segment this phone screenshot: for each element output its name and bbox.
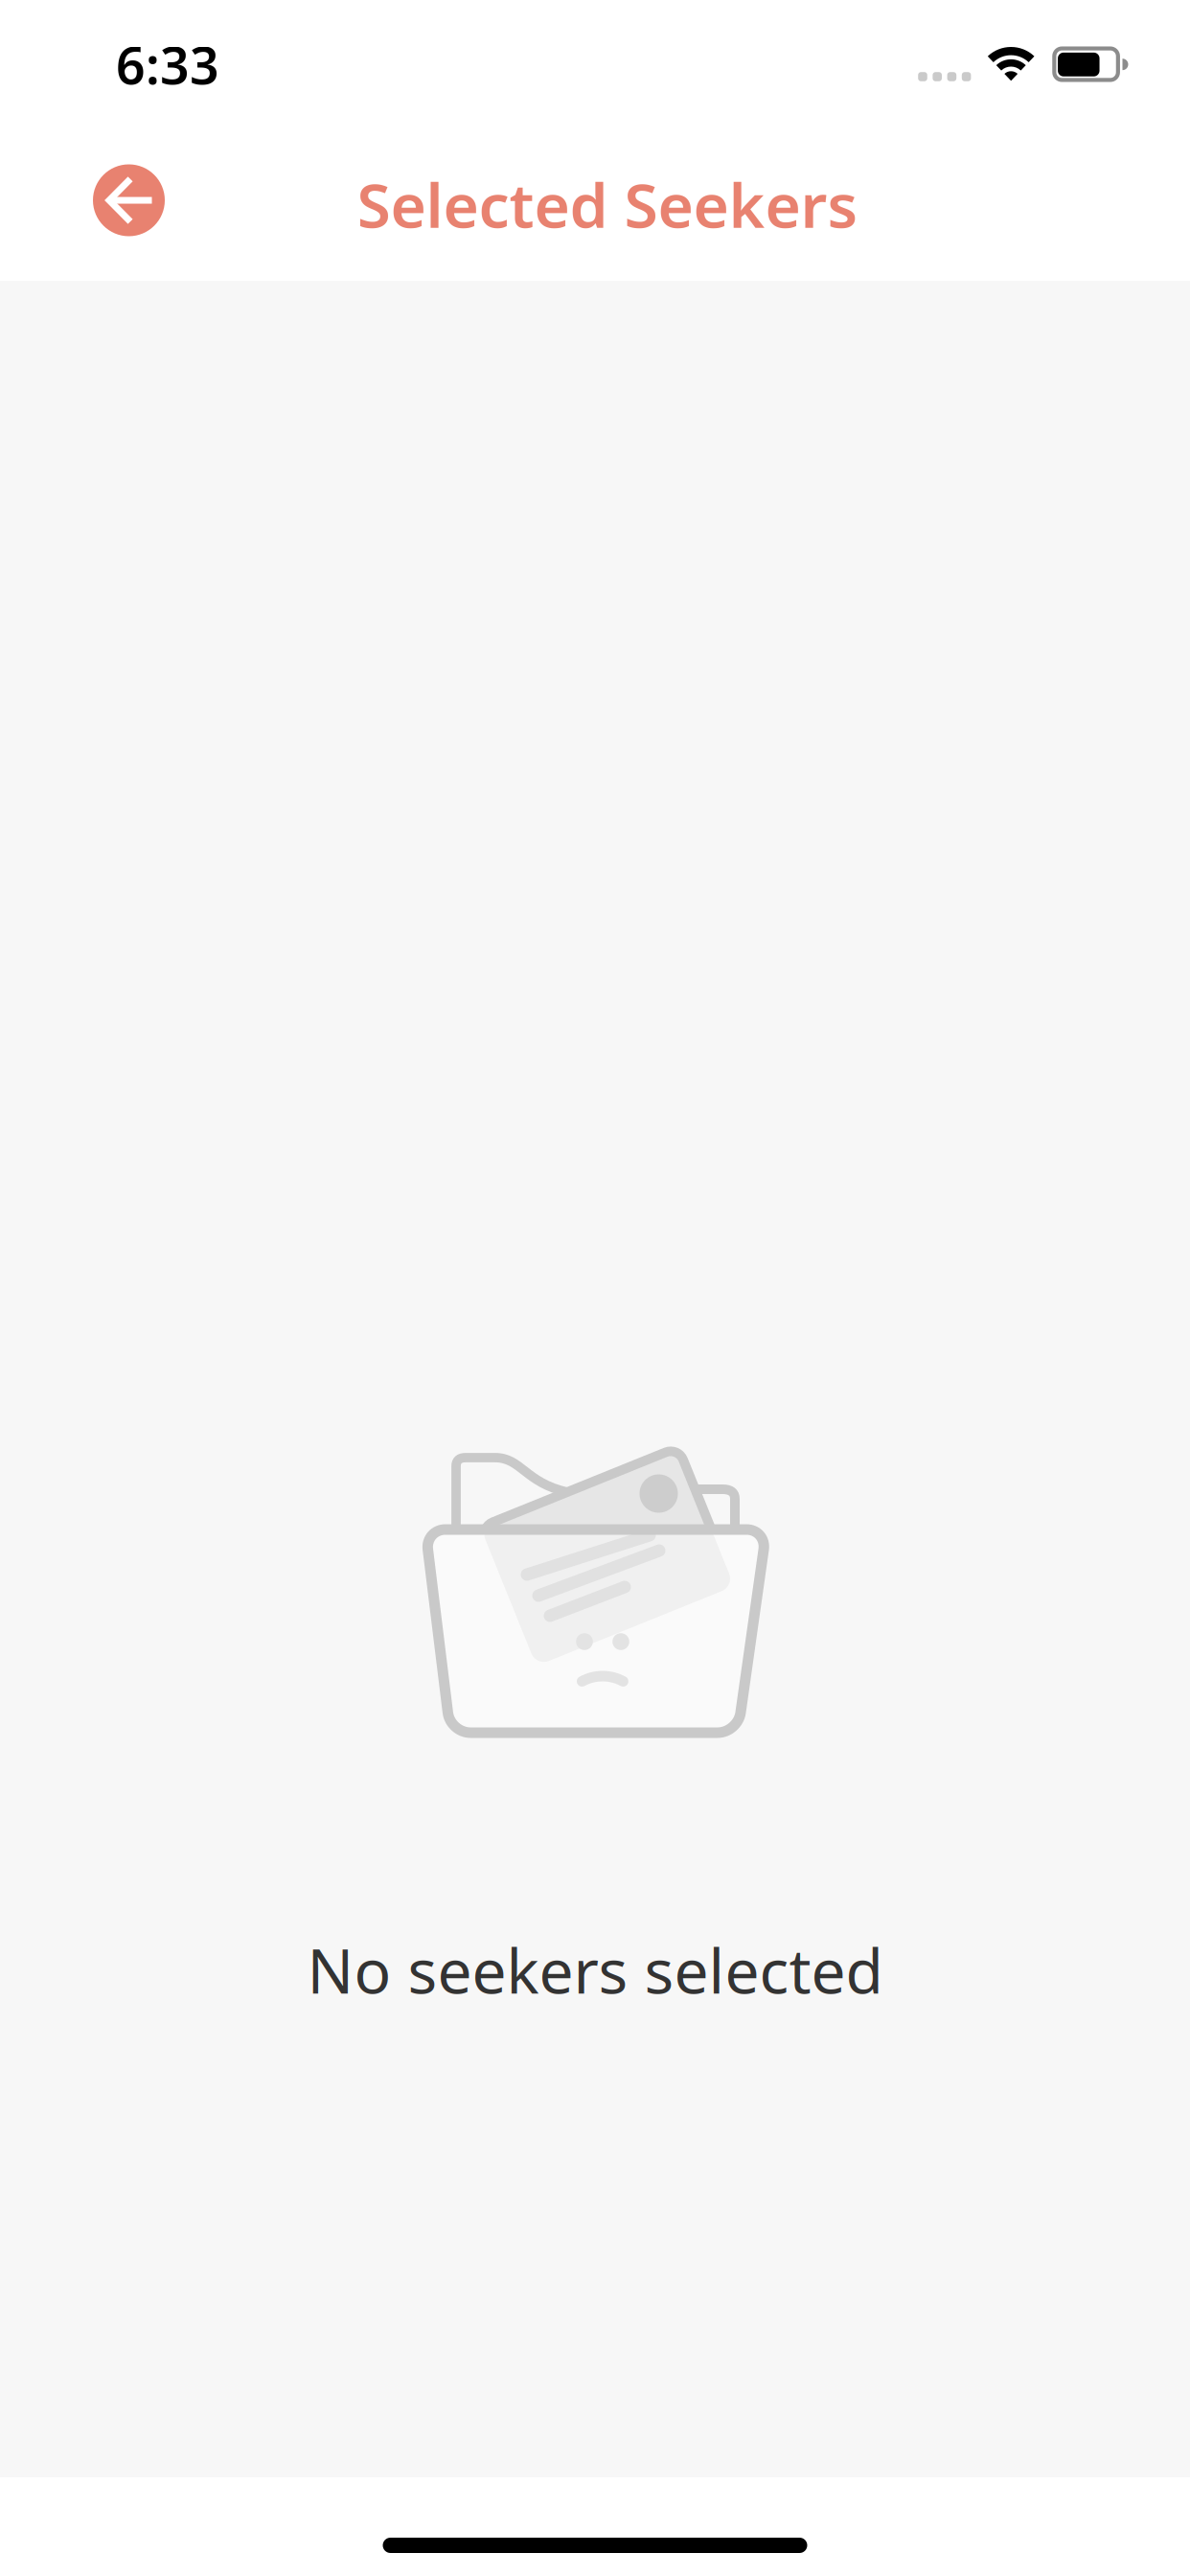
staticText: No seekers selected (307, 1929, 883, 2011)
staticText: Selected Seekers (357, 163, 858, 245)
staticText: 6:33 (116, 31, 219, 99)
button[interactable]: Back (93, 164, 165, 236)
